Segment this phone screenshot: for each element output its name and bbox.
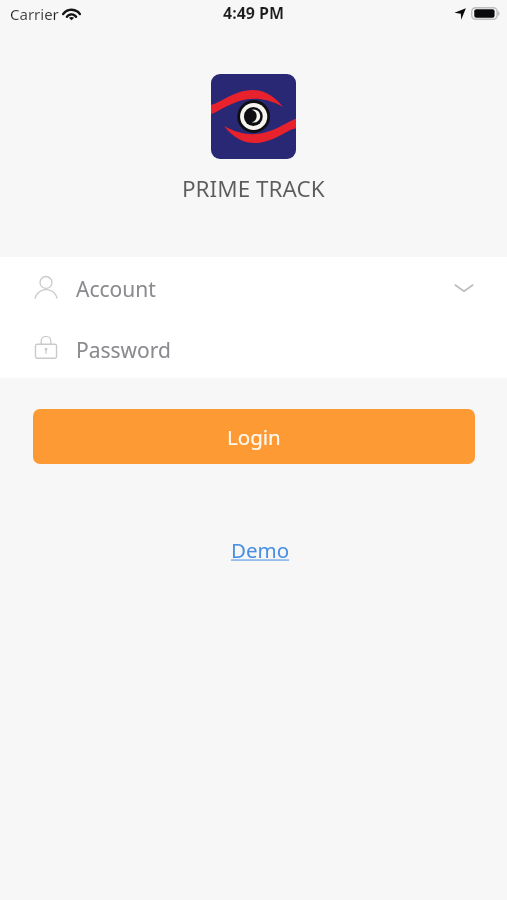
staticText: Account — [76, 275, 156, 304]
staticText: 4:49 PM — [223, 2, 285, 24]
button[interactable]: Demo — [223, 530, 298, 570]
button[interactable]: Login — [33, 409, 475, 464]
staticText: Login — [227, 423, 281, 451]
staticText: Password — [76, 336, 171, 365]
staticText: Carrier — [10, 4, 59, 24]
button[interactable]: Account — [0, 257, 507, 318]
staticText: PRIME TRACK — [182, 173, 325, 204]
button[interactable]: Show saved accounts — [442, 266, 486, 310]
staticText: Demo — [231, 536, 290, 564]
button[interactable]: Password — [0, 318, 507, 378]
